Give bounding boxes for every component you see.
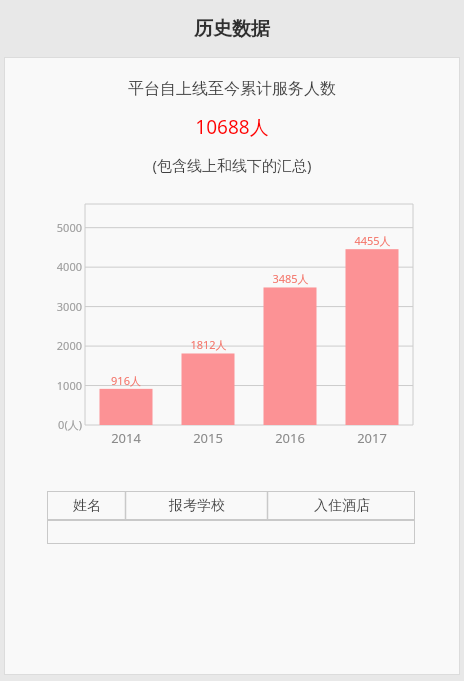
staticText: 4000	[56, 259, 82, 274]
staticText: 916人	[111, 373, 141, 388]
button[interactable]: 历史数据	[0, 0, 464, 57]
staticText: 3485人	[272, 271, 309, 286]
staticText: 0(人)	[58, 417, 82, 432]
staticText: 2000	[56, 338, 82, 353]
staticText: 2016	[275, 429, 305, 447]
button[interactable]: Empty data row	[47, 520, 415, 544]
staticText: 4455人	[354, 233, 391, 248]
staticText: 报考学校	[169, 497, 225, 515]
other: Yearly service count bar chart	[4, 57, 460, 675]
staticText: 2015	[193, 429, 223, 447]
staticText: 2017	[357, 429, 387, 447]
staticText: (包含线上和线下的汇总)	[152, 155, 312, 175]
staticText: 5000	[56, 220, 82, 235]
staticText: 3000	[56, 299, 82, 314]
staticText: 10688人	[195, 114, 269, 140]
button[interactable]: 姓名	[47, 491, 415, 520]
staticText: 1000	[56, 378, 82, 393]
staticText: 平台自上线至今累计服务人数	[128, 79, 336, 99]
staticText: 入住酒店	[314, 497, 370, 515]
staticText: 历史数据	[194, 17, 270, 41]
staticText: 1812人	[190, 337, 227, 352]
staticText: 2014	[111, 429, 141, 447]
staticText: 姓名	[73, 497, 101, 515]
